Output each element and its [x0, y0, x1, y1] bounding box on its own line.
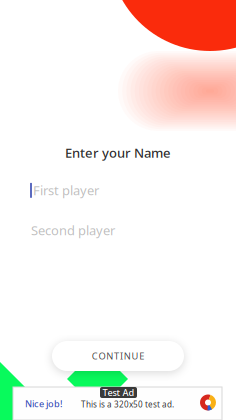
staticText: This is a 320x50 test ad.	[81, 399, 174, 410]
staticText: Enter your Name	[65, 144, 171, 161]
staticText: Nice job!	[25, 397, 63, 410]
button[interactable]: First player	[0, 181, 236, 199]
staticText: Test Ad	[102, 386, 134, 399]
staticText: First player	[33, 182, 99, 199]
staticText: Second player	[31, 222, 115, 239]
button[interactable]: CONTINUE	[52, 341, 184, 371]
button[interactable]: Second player	[0, 221, 236, 239]
button[interactable]: Nice job!	[13, 387, 222, 420]
staticText: CONTINUE	[92, 350, 144, 362]
